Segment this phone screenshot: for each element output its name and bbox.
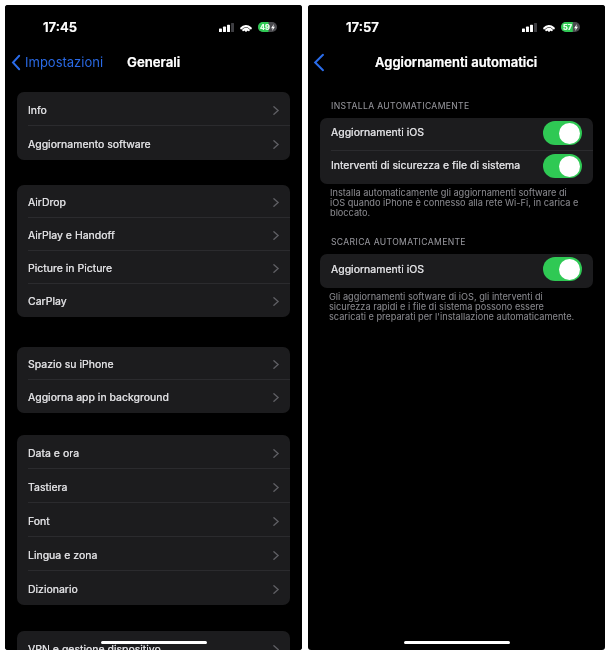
staticText: Aggiornamenti automatici [375, 54, 538, 70]
button[interactable]: Aggiorna app in background [17, 380, 290, 413]
staticText: 49 [260, 23, 270, 32]
button[interactable]: Impostazioni [12, 54, 104, 70]
button[interactable]: AirPlay e Handoff [17, 218, 290, 251]
staticText: Data e ora [28, 447, 80, 460]
staticText: Dizionario [28, 583, 78, 596]
button[interactable]: Aggiornamenti iOS [320, 254, 593, 288]
staticText: CarPlay [28, 295, 67, 308]
staticText: Impostazioni [25, 54, 104, 70]
staticText: Spazio su iPhone [28, 358, 114, 371]
staticText: Tastiera [28, 481, 68, 494]
staticText: Installa automaticamente gli aggiornamen… [330, 187, 581, 219]
button[interactable]: Picture in Picture [17, 251, 290, 284]
staticText: 57 [563, 23, 573, 32]
button[interactable]: Info [17, 92, 290, 126]
button[interactable]: Aggiornamento software [17, 126, 290, 160]
button[interactable]: Indietro [308, 50, 330, 74]
staticText: 17:45 [43, 19, 78, 35]
staticText: Aggiorna app in background [28, 391, 169, 404]
button[interactable]: Interventi di sicurezza e file di sistem… [320, 151, 593, 184]
staticText: SCARICA AUTOMATICAMENTE [331, 237, 466, 247]
staticText: Aggiornamento software [28, 138, 151, 151]
staticText: Font [28, 515, 50, 528]
button[interactable]: Spazio su iPhone [17, 347, 290, 380]
staticText: Picture in Picture [28, 262, 113, 275]
staticText: VPN e gestione dispositivo [28, 643, 161, 650]
staticText: Interventi di sicurezza e file di sistem… [331, 159, 521, 172]
staticText: Aggiornamenti iOS [331, 126, 424, 139]
button[interactable]: VPN e gestione dispositivo [17, 631, 290, 650]
button[interactable]: Font [17, 503, 290, 537]
staticText: Generali [127, 54, 181, 70]
staticText: AirDrop [28, 196, 67, 209]
button[interactable]: Data e ora [17, 435, 290, 469]
staticText: AirPlay e Handoff [28, 229, 115, 242]
button[interactable]: Lingua e zona [17, 537, 290, 571]
staticText: INSTALLA AUTOMATICAMENTE [331, 101, 470, 111]
button[interactable]: CarPlay [17, 284, 290, 317]
button[interactable]: AirDrop [17, 185, 290, 218]
button[interactable]: Tastiera [17, 469, 290, 503]
staticText: Lingua e zona [28, 549, 98, 562]
staticText: Gli aggiornamenti software di iOS, gli i… [329, 291, 580, 323]
button[interactable]: Dizionario [17, 571, 290, 605]
staticText: 17:57 [346, 19, 379, 35]
staticText: Aggiornamenti iOS [331, 263, 424, 276]
button[interactable]: Aggiornamenti iOS [320, 118, 593, 151]
staticText: Info [28, 104, 47, 117]
